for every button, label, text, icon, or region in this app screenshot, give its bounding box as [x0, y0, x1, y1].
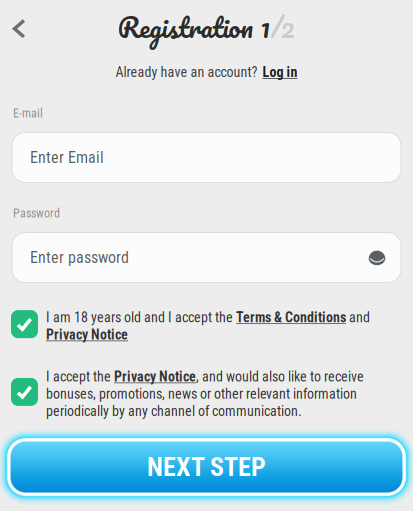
button[interactable]: Back	[8, 8, 42, 46]
staticText: Enter Email	[30, 148, 104, 167]
button[interactable]: NEXT STEP	[2, 433, 411, 501]
staticText: Enter password	[30, 248, 129, 267]
staticText: Registration 1	[117, 4, 270, 50]
staticText: E-mail	[13, 106, 43, 120]
staticText: I accept the Privacy Notice, and would a…	[46, 369, 364, 419]
staticText: Already have an account?	[115, 64, 257, 80]
button[interactable]: I am 18 years old and I accept the Terms…	[11, 309, 402, 343]
staticText: I am 18 years old and I accept the Terms…	[46, 309, 370, 343]
staticText: /2	[270, 4, 295, 50]
staticText: NEXT STEP	[147, 452, 266, 482]
button[interactable]: Log in	[262, 64, 297, 80]
button[interactable]: I accept the Privacy Notice, and would a…	[11, 369, 402, 419]
staticText: Log in	[262, 64, 297, 80]
staticText: Password	[13, 206, 60, 221]
